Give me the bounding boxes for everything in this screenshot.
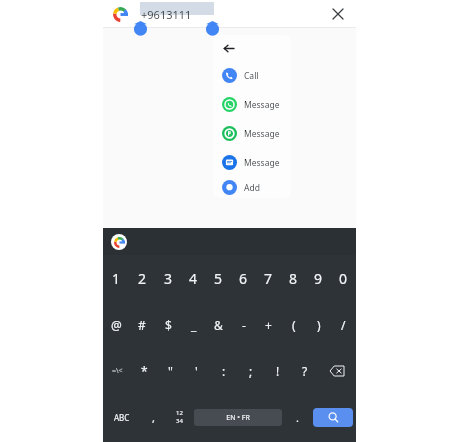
button[interactable]: _ [181, 302, 206, 348]
staticText: / [341, 317, 346, 333]
staticText: EN • FR [226, 413, 250, 423]
staticText: ; [249, 363, 253, 379]
staticText: ' [195, 363, 198, 379]
button[interactable]: @ [103, 302, 129, 348]
button[interactable]: / [331, 302, 356, 348]
button[interactable]: Search [313, 408, 353, 427]
staticText: 4 [189, 269, 198, 288]
button[interactable]: " [157, 348, 183, 394]
button[interactable]: 12 [166, 394, 192, 440]
button[interactable]: Add [213, 177, 291, 198]
staticText: , [152, 410, 155, 425]
button[interactable]: 2 [129, 255, 155, 302]
staticText: & [214, 317, 223, 333]
button[interactable]: Back [213, 35, 291, 61]
staticText: 9 [314, 269, 323, 288]
staticText: Message [244, 157, 280, 169]
staticText: 1 [112, 269, 121, 288]
button[interactable]: 7 [256, 255, 281, 302]
staticText: : [222, 363, 226, 379]
staticText: + [265, 317, 272, 333]
staticText: _ [191, 317, 197, 333]
staticText: ) [317, 317, 321, 333]
button[interactable]: & [206, 302, 231, 348]
staticText: " [168, 363, 173, 379]
button[interactable]: 5 [206, 255, 231, 302]
button[interactable]: ; [237, 348, 264, 394]
staticText: 8 [289, 269, 298, 288]
staticText: * [141, 363, 148, 379]
staticText: 7 [264, 269, 273, 288]
staticText: ( [292, 317, 296, 333]
staticText: =\< [112, 366, 123, 376]
button[interactable]: # [129, 302, 155, 348]
staticText: ABC [114, 412, 130, 423]
staticText: 12 [176, 409, 183, 417]
button[interactable]: 3 [155, 255, 181, 302]
button[interactable]: , [140, 394, 166, 440]
button[interactable]: 6 [231, 255, 256, 302]
button[interactable]: ) [306, 302, 331, 348]
button[interactable]: . [284, 394, 310, 440]
staticText: 3 [164, 269, 173, 288]
staticText: ! [276, 363, 280, 379]
button[interactable]: 4 [181, 255, 206, 302]
staticText: Call [244, 70, 259, 82]
button[interactable]: Google [111, 5, 129, 23]
button[interactable]: Close [328, 4, 348, 24]
button[interactable]: Message [213, 90, 291, 119]
staticText: 6 [239, 269, 248, 288]
button[interactable]: Message [213, 119, 291, 148]
staticText: . [296, 410, 299, 425]
button[interactable]: 8 [281, 255, 306, 302]
staticText: 0 [339, 269, 348, 288]
staticText: Message [244, 128, 280, 140]
staticText: $ [165, 317, 172, 333]
button[interactable]: + [256, 302, 281, 348]
staticText: +9613111 [141, 7, 192, 22]
button[interactable]: Google Assistant [111, 234, 127, 250]
button[interactable]: * [131, 348, 157, 394]
staticText: Message [244, 99, 280, 111]
button[interactable]: : [210, 348, 237, 394]
staticText: ? [302, 363, 308, 379]
button[interactable]: EN • FR [194, 409, 282, 426]
button[interactable]: ( [281, 302, 306, 348]
staticText: @ [111, 317, 122, 333]
button[interactable]: ? [291, 348, 318, 394]
button[interactable]: $ [155, 302, 181, 348]
button[interactable]: 1 [103, 255, 129, 302]
button[interactable]: - [231, 302, 256, 348]
staticText: 34 [176, 417, 183, 425]
button[interactable]: ' [183, 348, 210, 394]
button[interactable]: ABC [103, 394, 140, 440]
button[interactable]: 0 [331, 255, 356, 302]
staticText: Add [244, 182, 260, 194]
button[interactable]: Call [213, 61, 291, 90]
button[interactable]: ! [264, 348, 291, 394]
staticText: 2 [138, 269, 147, 288]
staticText: # [138, 317, 146, 333]
staticText: 5 [214, 269, 223, 288]
staticText: - [242, 317, 246, 333]
button[interactable]: Message [213, 148, 291, 177]
button[interactable]: =\< [103, 348, 131, 394]
button[interactable]: 9 [306, 255, 331, 302]
button[interactable]: Backspace [318, 348, 356, 394]
